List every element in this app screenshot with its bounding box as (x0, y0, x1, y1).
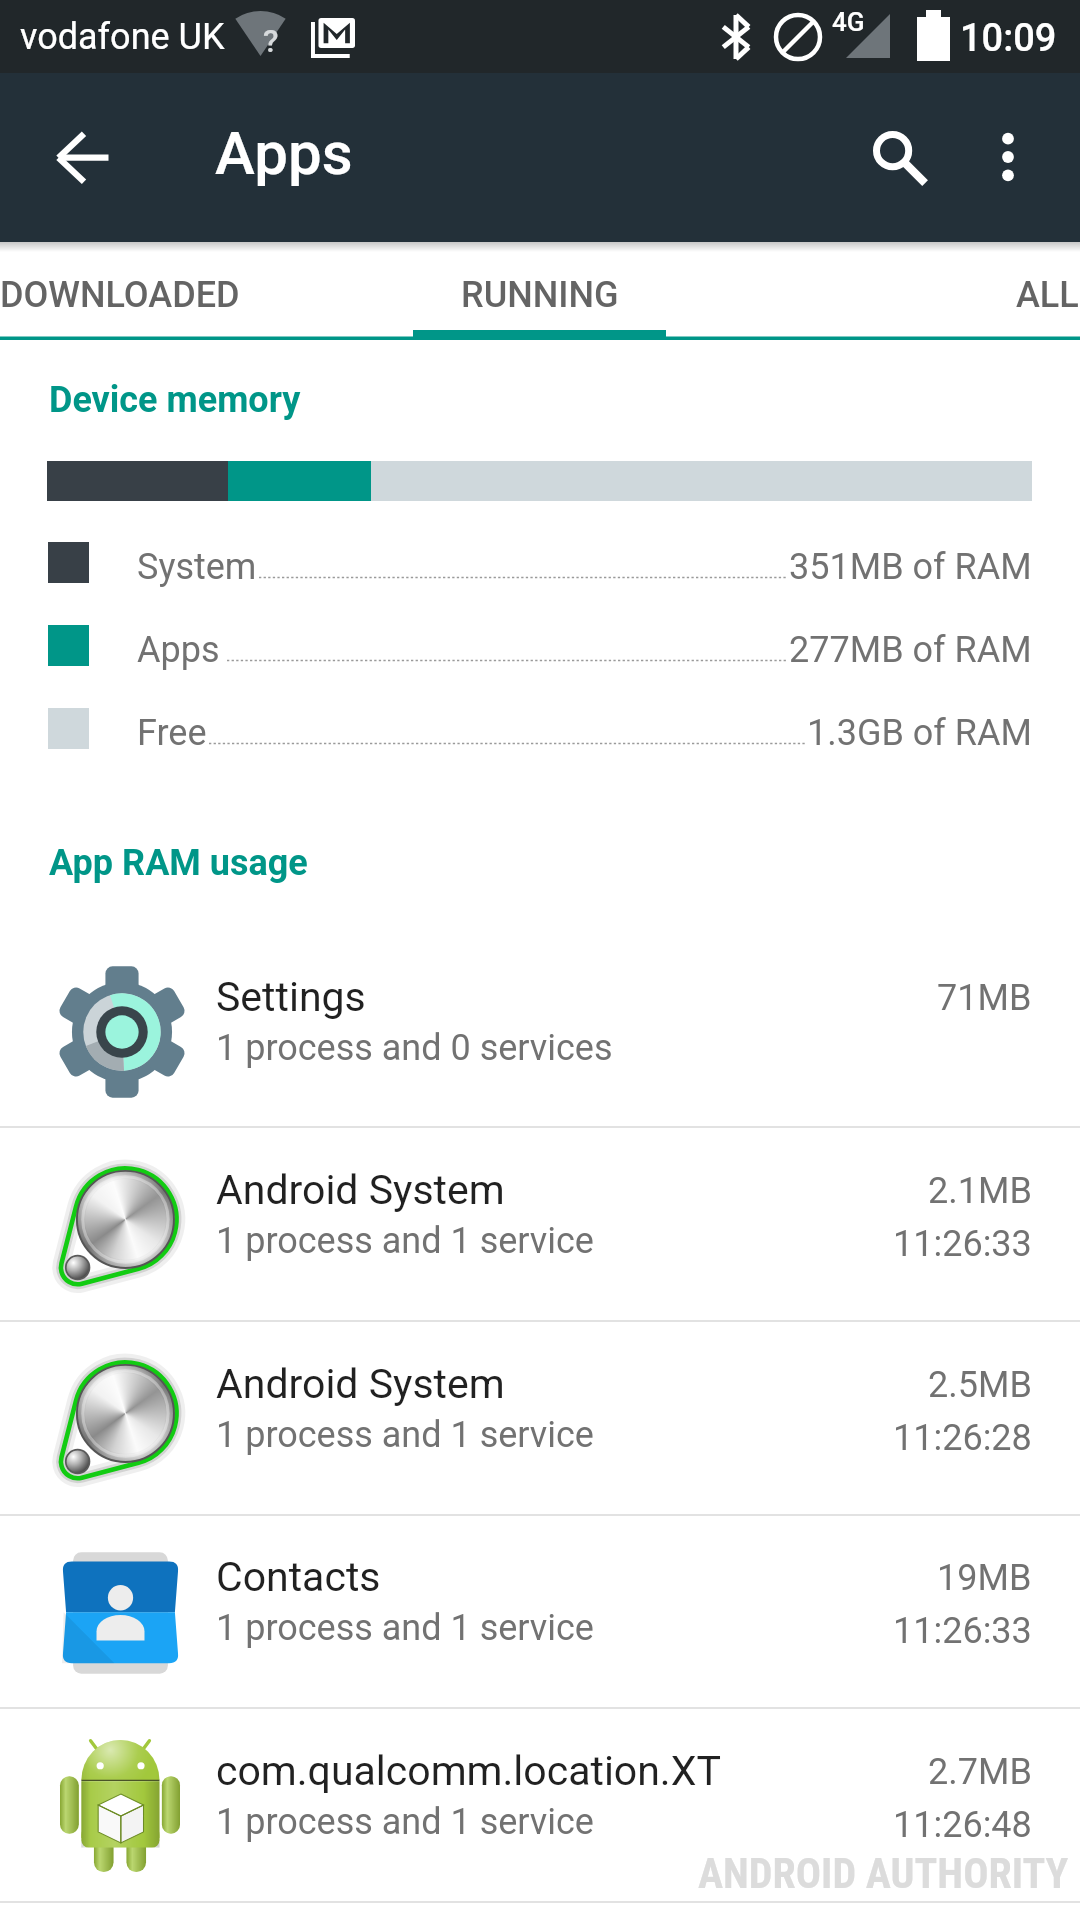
staticText: 2.5MB (928, 1364, 1032, 1406)
staticText: 11:26:28 (893, 1417, 1032, 1459)
staticText: 2.7MB (928, 1751, 1032, 1793)
button[interactable]: Android System (0, 1128, 1080, 1322)
button[interactable]: Contacts (0, 1515, 1080, 1709)
staticText: 4G (832, 7, 865, 37)
button[interactable]: Navigate up (36, 111, 132, 207)
button[interactable]: DOWNLOADED (0, 242, 240, 336)
staticText: System (137, 546, 257, 588)
staticText: vodafone UK (20, 16, 225, 58)
staticText: Apps (137, 629, 220, 671)
button[interactable]: Apps (0, 607, 1080, 690)
button[interactable]: Android System (0, 1322, 1080, 1516)
staticText: 277MB of RAM (789, 629, 1032, 671)
staticText: 11:26:48 (893, 1804, 1032, 1846)
staticText: 19MB (937, 1557, 1032, 1599)
staticText: Apps (215, 118, 353, 188)
staticText: Free (137, 712, 207, 754)
button[interactable]: Search (845, 111, 941, 207)
staticText: 1 process and 0 services (216, 1027, 613, 1069)
button[interactable]: Free (0, 690, 1080, 773)
staticText: 351MB of RAM (789, 546, 1032, 588)
staticText: 1 process and 1 service (216, 1220, 594, 1262)
staticText: 1 process and 1 service (216, 1414, 594, 1456)
button[interactable]: System (0, 524, 1080, 607)
staticText: Device memory (49, 379, 301, 421)
button[interactable]: ALL (1016, 242, 1080, 336)
staticText: Settings (216, 973, 366, 1021)
staticText: ANDROID AUTHORITY (698, 1849, 1069, 1898)
staticText: Contacts (216, 1553, 381, 1601)
staticText: 1 process and 1 service (216, 1607, 594, 1649)
button[interactable]: More options (960, 111, 1056, 207)
staticText: 2.1MB (928, 1170, 1032, 1212)
staticText: Android System (216, 1360, 505, 1408)
staticText: DOWNLOADED (0, 274, 240, 316)
staticText: ALL (1016, 274, 1079, 316)
staticText: Android System (216, 1166, 505, 1214)
staticText: 1 process and 1 service (216, 1801, 594, 1843)
staticText: App RAM usage (49, 842, 308, 884)
staticText: 1.3GB of RAM (807, 712, 1032, 754)
staticText: com.qualcomm.location.XT (216, 1747, 721, 1795)
staticText: 71MB (937, 977, 1032, 1019)
staticText: 11:26:33 (893, 1610, 1032, 1652)
button[interactable]: com.qualcomm.location.XT (0, 1709, 1080, 1903)
staticText: RUNNING (461, 274, 619, 316)
staticText: ? (263, 22, 279, 60)
staticText: 10:09 (960, 16, 1057, 61)
staticText: 11:26:33 (893, 1223, 1032, 1265)
button[interactable]: Settings (0, 935, 1080, 1128)
button[interactable]: RUNNING (413, 242, 666, 336)
